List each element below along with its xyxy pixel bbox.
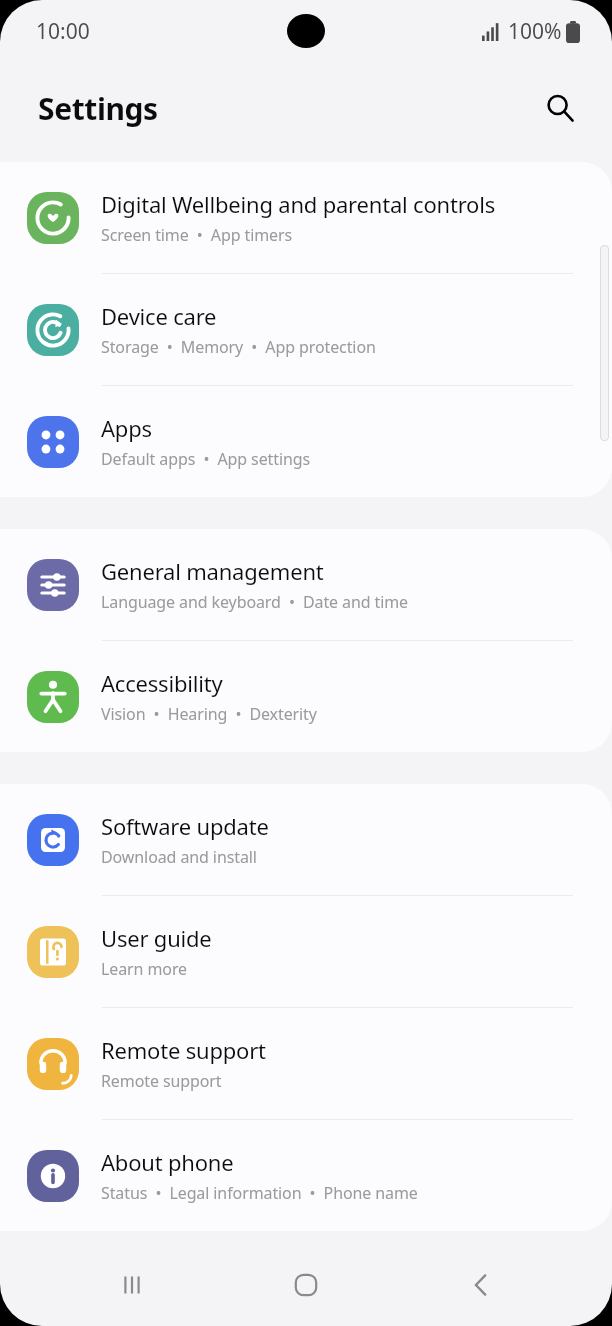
staticText: 10:00 — [36, 17, 90, 46]
button[interactable]: User guide — [0, 896, 612, 1008]
staticText: Accessibility — [101, 668, 223, 698]
staticText: Status • Legal information • Phone name — [101, 1182, 418, 1204]
button[interactable]: General management — [0, 529, 612, 641]
button[interactable]: About phone — [0, 1120, 612, 1231]
staticText: About phone — [101, 1147, 234, 1177]
button[interactable]: Remote support — [0, 1008, 612, 1120]
staticText: General management — [101, 556, 324, 586]
button[interactable]: Search — [534, 82, 586, 134]
staticText: Apps — [101, 413, 152, 443]
button[interactable]: Digital Wellbeing and parental controls — [0, 162, 612, 274]
staticText: Software update — [101, 811, 269, 841]
button[interactable]: Accessibility — [0, 641, 612, 752]
button[interactable]: Device care — [0, 274, 612, 386]
staticText: Storage • Memory • App protection — [101, 336, 376, 358]
staticText: Screen time • App timers — [101, 224, 293, 246]
staticText: 100% — [508, 17, 562, 46]
button[interactable]: Software update — [0, 784, 612, 896]
staticText: Default apps • App settings — [101, 448, 311, 470]
button[interactable]: Recents — [89, 1244, 175, 1326]
staticText: Download and install — [101, 846, 257, 868]
staticText: User guide — [101, 923, 212, 953]
staticText: Device care — [101, 301, 217, 331]
button[interactable]: Home — [263, 1244, 349, 1326]
staticText: Digital Wellbeing and parental controls — [101, 189, 496, 219]
staticText: Remote support — [101, 1070, 222, 1092]
staticText: Remote support — [101, 1035, 266, 1065]
staticText: Vision • Hearing • Dexterity — [101, 703, 317, 725]
button[interactable]: Back — [438, 1244, 524, 1326]
staticText: Learn more — [101, 958, 187, 980]
staticText: Language and keyboard • Date and time — [101, 591, 408, 613]
staticText: Settings — [38, 88, 158, 129]
button[interactable]: Apps — [0, 386, 612, 497]
